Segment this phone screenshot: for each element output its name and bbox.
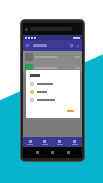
button[interactable] <box>30 90 76 94</box>
button[interactable] <box>30 82 76 86</box>
button[interactable]: Search <box>70 44 74 48</box>
button[interactable] <box>30 98 76 102</box>
button[interactable]: Tab 2 <box>37 137 52 147</box>
button[interactable]: Tab 4 <box>67 137 82 147</box>
button[interactable] <box>65 108 76 114</box>
button[interactable] <box>23 51 82 62</box>
button[interactable] <box>23 62 82 73</box>
button[interactable]: Tab 3 <box>52 137 67 147</box>
button[interactable]: Menu <box>25 43 30 48</box>
button[interactable]: More options <box>76 44 80 48</box>
button[interactable]: Tab 1 <box>23 137 37 147</box>
